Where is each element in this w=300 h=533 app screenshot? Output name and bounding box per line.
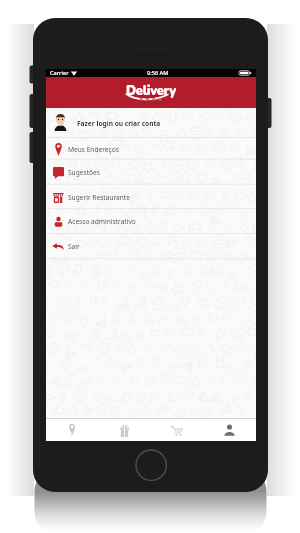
staticText: Delivery: [126, 82, 176, 100]
button[interactable]: Profile: [203, 419, 256, 441]
button[interactable]: Sugerir Restaurante: [46, 185, 256, 210]
staticText: Sair: [68, 242, 80, 251]
staticText: Carrier: [50, 69, 69, 77]
staticText: Meus Endereços: [68, 145, 119, 154]
button[interactable]: Cart: [150, 419, 203, 441]
staticText: Sugestões: [68, 168, 100, 177]
button[interactable]: Meus Endereços: [46, 138, 256, 160]
button[interactable]: Promotions: [98, 419, 150, 441]
button[interactable]: Sugestões: [46, 160, 256, 185]
button[interactable]: Fazer login ou criar conta: [46, 108, 256, 138]
staticText: Sugerir Restaurante: [68, 193, 130, 202]
button[interactable]: Sair: [46, 234, 256, 259]
button[interactable]: Acesso administrativo: [46, 209, 256, 234]
staticText: Fazer login ou criar conta: [77, 119, 161, 128]
staticText: Acesso administrativo: [68, 217, 136, 226]
button[interactable]: Locations: [46, 419, 98, 441]
staticText: 9:56 AM: [147, 69, 169, 77]
